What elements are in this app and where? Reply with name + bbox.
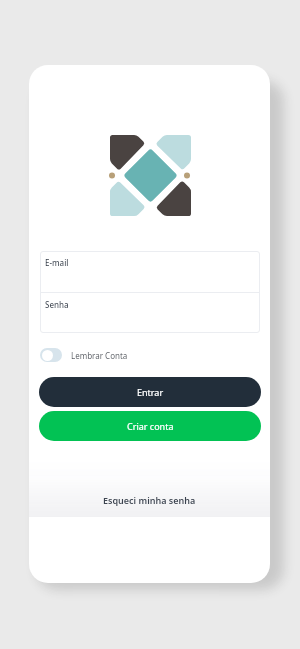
- other: Logo: [110, 135, 191, 216]
- staticText: Esqueci minha senha: [103, 494, 196, 506]
- staticText: E-mail: [45, 257, 69, 268]
- button[interactable]: Senha: [40, 293, 260, 333]
- button[interactable]: Criar conta: [39, 411, 261, 441]
- staticText: Lembrar Conta: [71, 350, 128, 361]
- staticText: Senha: [45, 299, 69, 310]
- button[interactable]: Lembrar Conta: [40, 343, 128, 367]
- staticText: Criar conta: [127, 420, 174, 432]
- staticText: Entrar: [137, 386, 164, 398]
- button[interactable]: Esqueci minha senha: [29, 490, 270, 510]
- button[interactable]: Entrar: [39, 377, 261, 407]
- button[interactable]: E-mail: [40, 251, 260, 292]
